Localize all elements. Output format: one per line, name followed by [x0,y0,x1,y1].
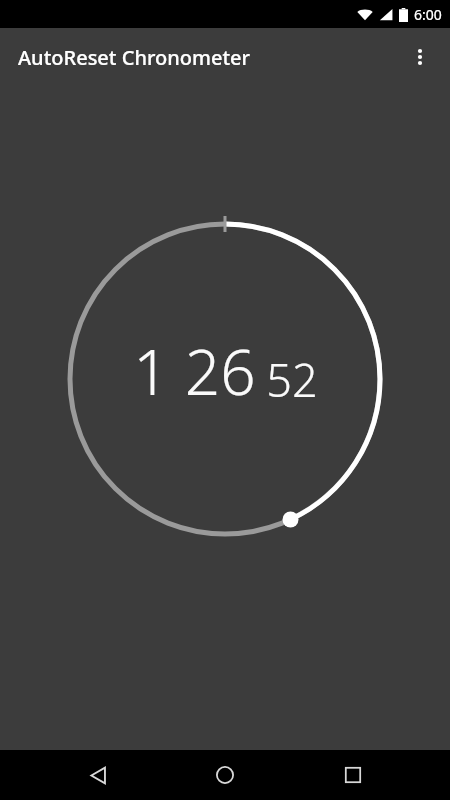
staticText: 52 [266,349,318,410]
button[interactable]: Back [68,750,128,800]
staticText: 1 26 [133,329,256,413]
staticText: AutoReset Chronometer [18,44,250,71]
button[interactable]: More options [398,35,442,79]
button[interactable]: Chronometer, 1 hour 26 minutes 52 second… [0,86,450,672]
staticText: 6:00 [414,5,442,24]
button[interactable]: Recent apps [323,750,383,800]
button[interactable]: Home [195,750,255,800]
